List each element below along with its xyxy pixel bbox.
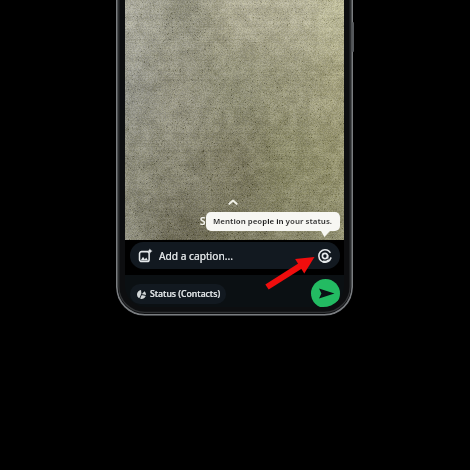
button[interactable]: Mention (318, 249, 332, 263)
staticText: Add a caption... (159, 249, 233, 263)
button[interactable]: Add a caption... (130, 242, 340, 269)
staticText: S (200, 214, 206, 228)
staticText: Status (Contacts) (150, 288, 221, 300)
button[interactable]: Expand (226, 196, 240, 210)
staticText: Mention people in your status. (213, 216, 333, 227)
button[interactable]: Status (Contacts) (130, 284, 226, 304)
button[interactable]: Send (311, 279, 340, 307)
